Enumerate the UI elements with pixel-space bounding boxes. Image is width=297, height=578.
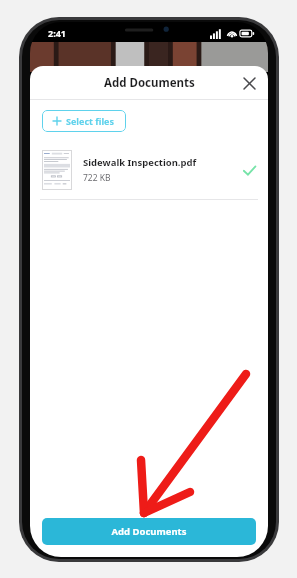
staticText: 2:41 [48,27,66,39]
staticText: 722 KB [83,172,111,184]
staticText: Add Documents [104,75,195,91]
button[interactable]: Add Documents [42,518,256,545]
staticText: Sidewalk Inspection.pdf [83,156,197,169]
button[interactable]: Select files [42,110,126,132]
staticText: Add Documents [111,525,187,538]
staticText: Select files [66,115,115,127]
button[interactable]: Sidewalk Inspection.pdf [30,141,268,199]
button[interactable]: Close [238,72,260,94]
